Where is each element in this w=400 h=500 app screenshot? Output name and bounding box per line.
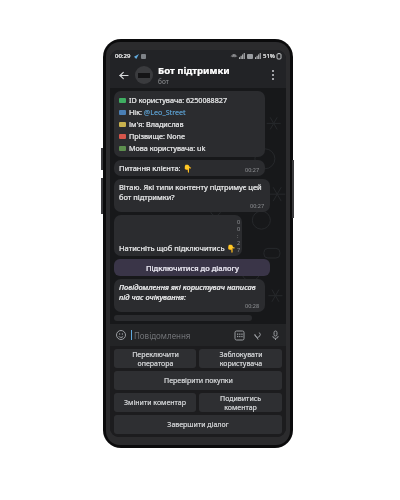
button[interactable]: Натисніть щоб підключитись 👇 — [114, 215, 242, 256]
staticText: 51% — [263, 52, 275, 60]
staticText: 00:27 — [250, 202, 265, 209]
staticText: бот — [158, 77, 169, 86]
button[interactable]: Вітаю. Які типи контенту підтримує цей б… — [114, 179, 270, 212]
staticText: 00:28 — [245, 302, 260, 309]
staticText: Питання клієнта: — [119, 163, 183, 173]
staticText: Натисніть щоб підключитись 👇 — [119, 243, 236, 253]
button[interactable]: Змінити коментар — [114, 393, 196, 412]
button[interactable]: Питання клієнта: — [114, 160, 265, 176]
staticText: Змінити коментар — [124, 398, 186, 408]
button[interactable]: More options — [265, 67, 281, 83]
staticText: Повідомлення які користувач написав під … — [119, 282, 260, 302]
staticText: 00:27 — [245, 166, 260, 173]
button[interactable]: Emoji — [115, 329, 127, 341]
button[interactable]: Attach — [251, 329, 263, 341]
button[interactable]: Бот підтримки (приклад) — [158, 64, 262, 86]
button[interactable]: Підключитися до діалогу — [114, 259, 270, 276]
staticText: ID користувача: 6250088827 — [129, 95, 228, 105]
button[interactable]: Keyboard — [233, 329, 245, 341]
button[interactable]: Voice message — [269, 329, 281, 341]
button[interactable]: Переключити оператора — [114, 349, 196, 368]
button[interactable]: Back — [115, 67, 131, 83]
button[interactable]: Подивитись коментар — [199, 393, 282, 412]
staticText: Нік: @Leo_Street — [129, 107, 186, 117]
staticText: Прізвище: None — [129, 131, 186, 141]
staticText: Вітаю. Які типи контенту підтримує цей б… — [119, 182, 265, 202]
staticText: Перевірити покупки — [164, 376, 233, 386]
staticText: Ім'я: Владислав — [129, 119, 184, 129]
staticText: 00:29 — [115, 52, 131, 60]
staticText: Підключитися до діалогу — [146, 263, 239, 273]
staticText: Подивитись коментар — [220, 394, 261, 412]
button[interactable]: Перевірити покупки — [114, 371, 282, 390]
staticText: 👇 — [183, 164, 193, 173]
button[interactable]: Повідомлення які користувач написав під … — [114, 279, 265, 312]
button[interactable]: Завершити діалог — [114, 415, 282, 434]
staticText: Завершити діалог — [167, 420, 229, 430]
staticText: Заблокувати користувача — [219, 350, 263, 368]
staticText: Мова користувача: uk — [129, 143, 206, 153]
button[interactable]: Profile photo — [135, 66, 153, 84]
button[interactable]: ID користувача: 6250088827 — [114, 91, 265, 157]
staticText: Повідомлення — [134, 330, 191, 341]
staticText: Переключити оператора — [132, 350, 179, 368]
staticText: Бот підтримки (приклад) — [158, 64, 262, 77]
button[interactable]: Заблокувати користувача — [199, 349, 282, 368]
